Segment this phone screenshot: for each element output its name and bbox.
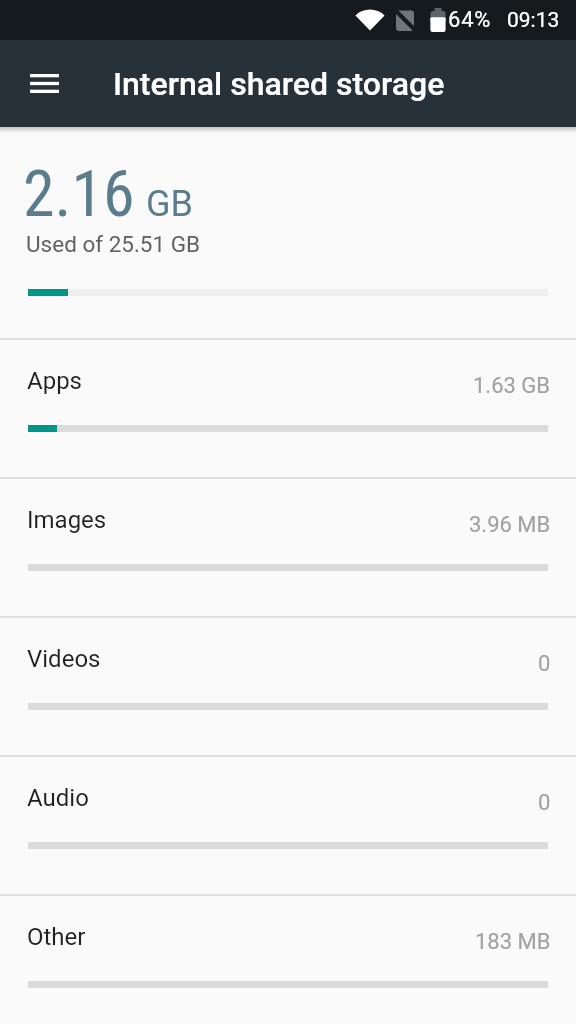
- staticText: Images: [27, 506, 107, 534]
- button[interactable]: Audio: [0, 757, 576, 894]
- staticText: 09:13: [507, 8, 560, 33]
- staticText: Internal shared storage: [113, 65, 445, 103]
- staticText: Used of 25.51 GB: [26, 231, 201, 257]
- staticText: Audio: [27, 784, 89, 812]
- staticText: 183 MB: [475, 929, 551, 955]
- staticText: 2.16: [23, 157, 135, 232]
- staticText: 0: [538, 790, 551, 816]
- staticText: 0: [538, 651, 551, 677]
- button[interactable]: [16, 55, 72, 111]
- staticText: Apps: [27, 367, 82, 395]
- staticText: Videos: [27, 645, 101, 673]
- button[interactable]: Other: [0, 896, 576, 1024]
- button[interactable]: Images: [0, 479, 576, 616]
- button[interactable]: Apps: [0, 340, 576, 477]
- button[interactable]: Videos: [0, 618, 576, 755]
- staticText: 64%: [448, 7, 492, 33]
- button[interactable]: 2.16: [0, 127, 576, 338]
- staticText: 1.63 GB: [473, 373, 551, 399]
- staticText: 3.96 MB: [469, 512, 551, 538]
- staticText: Other: [27, 923, 86, 951]
- staticText: GB: [146, 183, 193, 225]
